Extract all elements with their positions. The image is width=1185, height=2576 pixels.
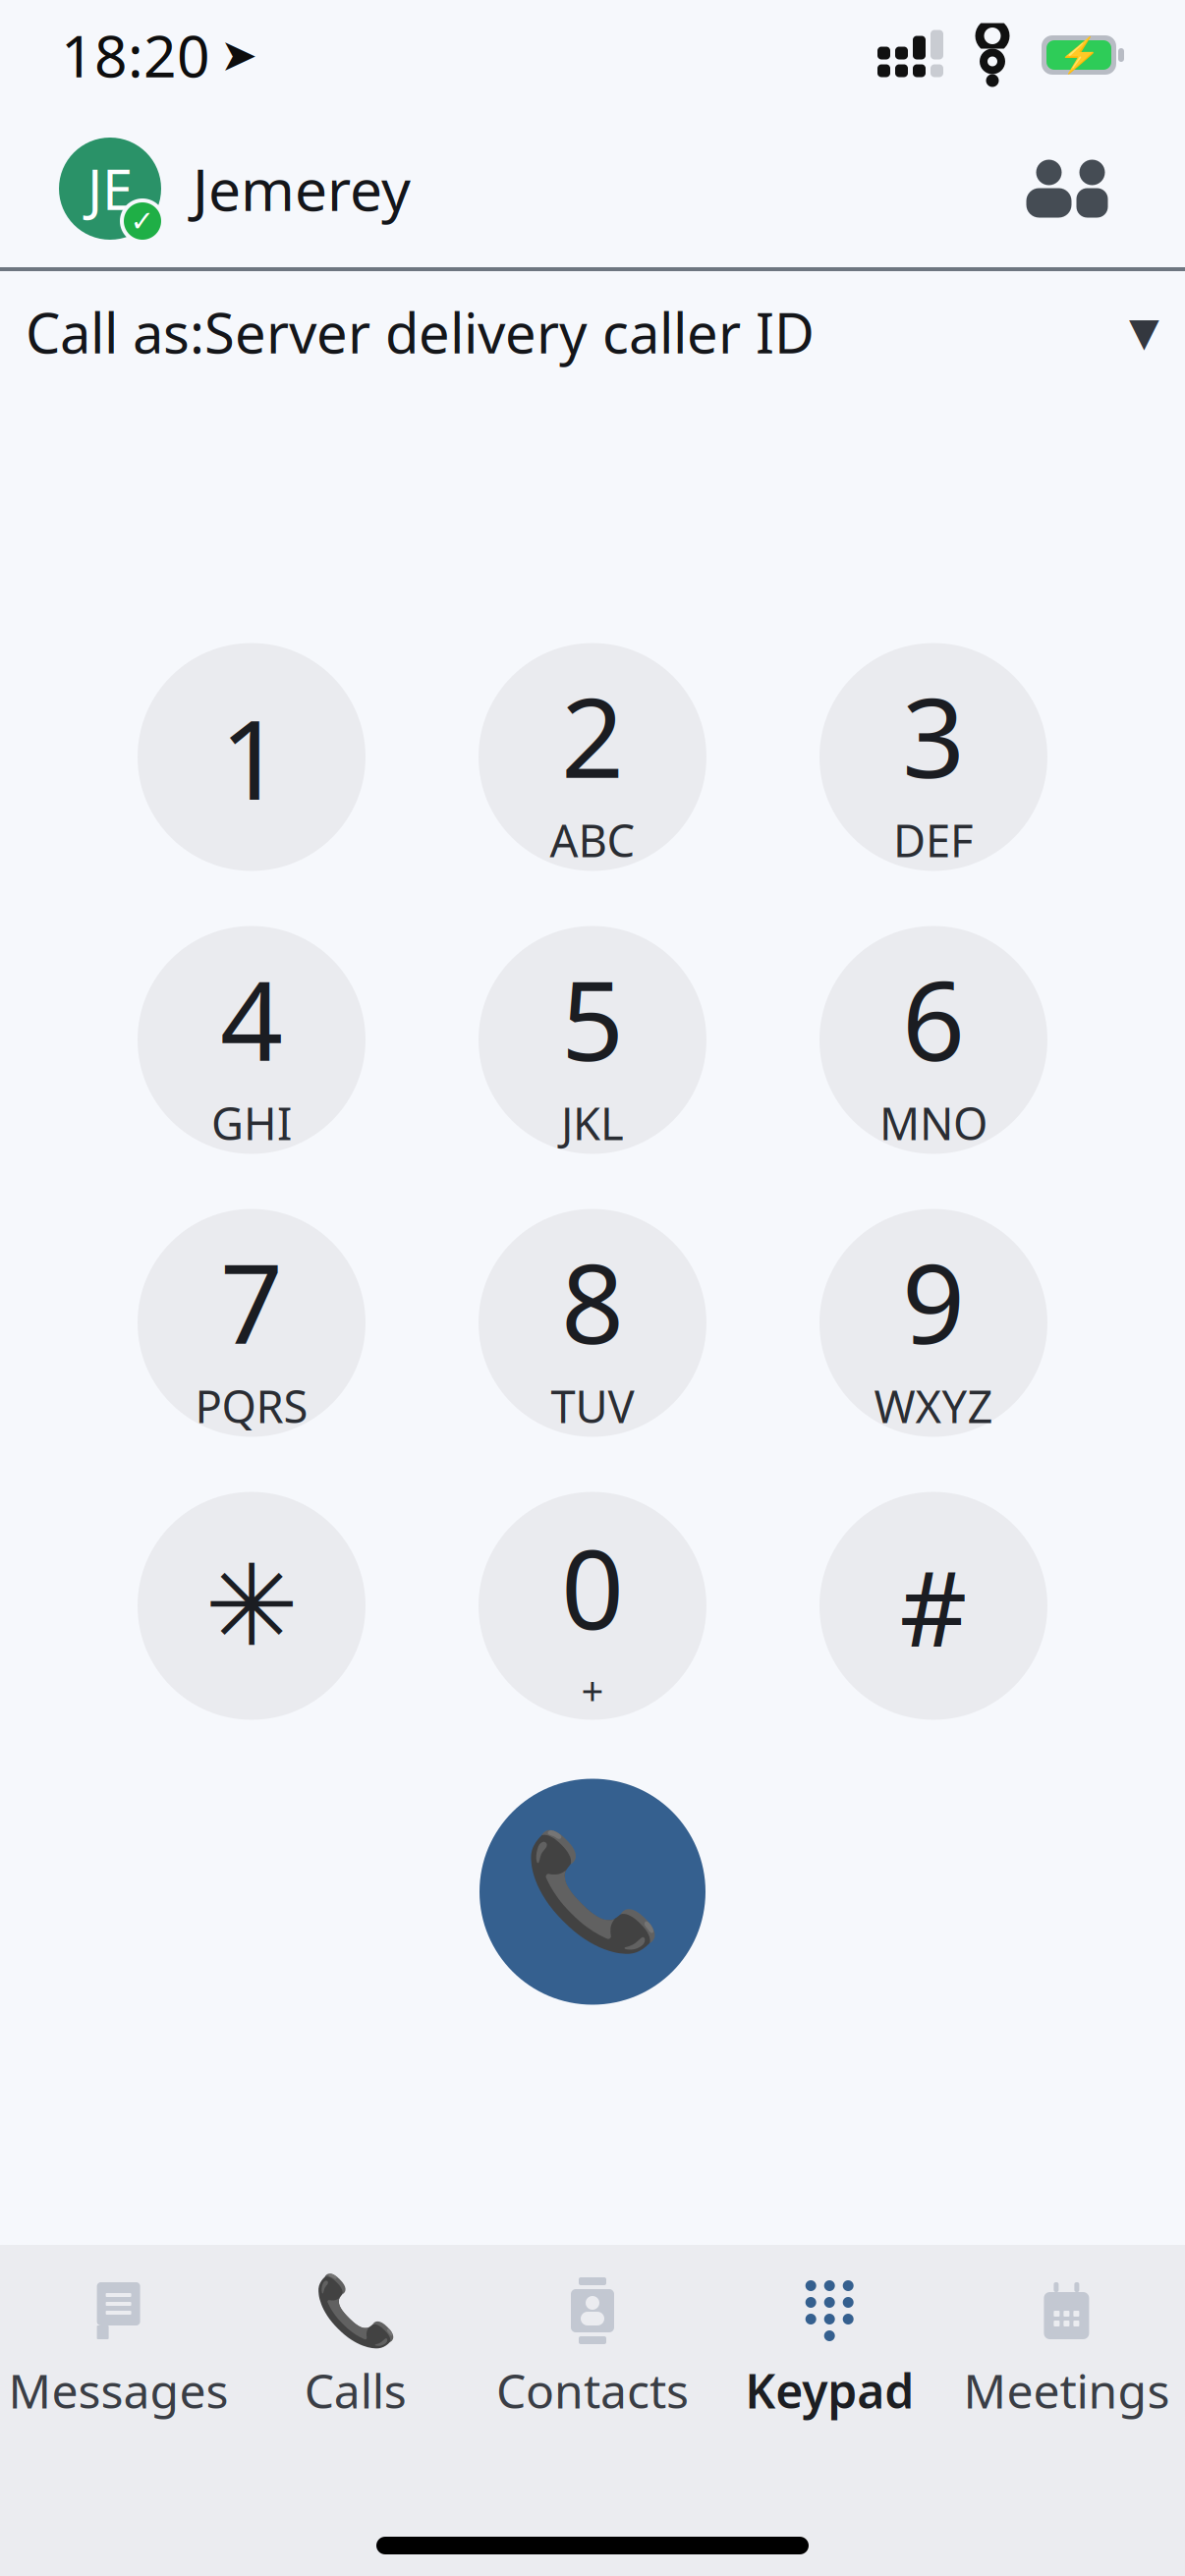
button[interactable]: Messages [0,2259,237,2443]
staticText: Call as:Server delivery caller ID [26,296,815,369]
button[interactable]: 📞 [237,2259,474,2443]
staticText: 18:20 [61,17,210,93]
button[interactable]: Meetings [948,2259,1185,2443]
button[interactable]: Keypad [711,2259,948,2443]
staticText: 📞 [313,2272,398,2350]
staticText: 8 [561,1228,624,1374]
staticText: 6 [902,945,965,1091]
button[interactable]: 8 [479,1209,706,1437]
button[interactable]: 6 [819,926,1047,1154]
staticText: ✳ [204,1542,299,1670]
button[interactable]: Contacts [474,2259,711,2443]
staticText: ➤ [220,30,257,80]
staticText: Calls [304,2359,407,2421]
staticText: PQRS [195,1376,308,1435]
staticText: + [581,1664,604,1716]
button[interactable]: 3 [819,643,1047,871]
staticText: GHI [211,1093,292,1152]
button[interactable]: 4 [138,926,366,1154]
button[interactable]: 1 [138,643,366,871]
staticText: 1 [220,684,283,830]
button[interactable]: 5 [479,926,706,1154]
button[interactable]: # [819,1492,1047,1720]
staticText: 9 [902,1228,965,1374]
staticText: 7 [220,1228,283,1374]
button[interactable]: Contacts [1004,137,1130,241]
staticText: 0 [561,1514,624,1660]
button[interactable]: ✳ [138,1492,366,1720]
button[interactable]: JE [55,134,411,244]
staticText: 5 [561,945,624,1091]
staticText: TUV [551,1376,634,1435]
staticText: ✓ [130,205,155,237]
staticText: DEF [893,810,974,869]
staticText: Jemerey [193,150,411,227]
staticText: WXYZ [874,1376,993,1435]
staticText: 3 [902,662,965,808]
button[interactable]: 2 [479,643,706,871]
button[interactable]: Call as:Server delivery caller ID [0,271,1185,393]
staticText: Keypad [745,2359,914,2421]
staticText: 📞 [522,1827,663,1956]
staticText: 2 [561,662,624,808]
button[interactable]: 0 [479,1492,706,1720]
staticText: JE [87,152,133,225]
staticText: Messages [8,2359,229,2421]
staticText: 4 [220,945,283,1091]
staticText: # [900,1536,967,1675]
staticText: MNO [879,1093,987,1152]
staticText: ⚡ [1058,36,1100,74]
button[interactable]: 9 [819,1209,1047,1437]
staticText: JKL [561,1093,624,1152]
staticText: ▼ [1129,310,1159,354]
staticText: ABC [550,810,635,869]
staticText: Contacts [496,2359,689,2421]
staticText: Meetings [963,2359,1170,2421]
button[interactable]: 7 [138,1209,366,1437]
button[interactable]: Call [480,1779,705,2005]
